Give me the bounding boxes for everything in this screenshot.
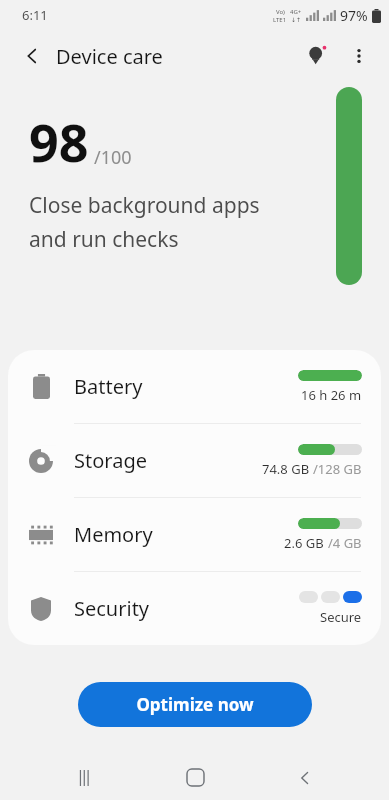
- staticText: Security: [74, 595, 150, 622]
- staticText: /100: [94, 145, 132, 170]
- staticText: Device care: [56, 43, 163, 70]
- button[interactable]: Memory: [8, 498, 381, 571]
- staticText: Optimize now: [136, 693, 254, 716]
- button[interactable]: Back: [12, 36, 52, 76]
- staticText: Storage: [74, 447, 147, 474]
- button[interactable]: Recents: [58, 755, 110, 800]
- staticText: Close background apps: [29, 191, 260, 220]
- staticText: 98: [29, 106, 89, 177]
- staticText: 4G+: [290, 8, 302, 16]
- staticText: and run checks: [29, 225, 179, 254]
- staticText: 6:11: [22, 6, 48, 24]
- staticText: Battery: [74, 373, 143, 400]
- staticText: /4 GB: [328, 534, 362, 552]
- staticText: LTE1: [273, 16, 287, 24]
- staticText: ↓↑: [291, 16, 302, 23]
- button[interactable]: Tips: [297, 36, 337, 76]
- button[interactable]: More options: [339, 36, 379, 76]
- staticText: Secure: [320, 608, 362, 626]
- staticText: 16 h 26 m: [301, 386, 362, 404]
- button[interactable]: Security: [8, 572, 381, 645]
- staticText: 74.8 GB: [262, 460, 313, 478]
- button[interactable]: Battery: [8, 350, 381, 423]
- staticText: /128 GB: [313, 460, 362, 478]
- button[interactable]: Home: [169, 755, 221, 800]
- staticText: 2.6 GB: [284, 534, 328, 552]
- staticText: Vo): [276, 8, 285, 16]
- button[interactable]: Back: [279, 755, 331, 800]
- button[interactable]: Storage: [8, 424, 381, 497]
- staticText: Memory: [74, 521, 153, 548]
- staticText: 97%: [340, 6, 368, 25]
- button[interactable]: Optimize now: [78, 682, 312, 727]
